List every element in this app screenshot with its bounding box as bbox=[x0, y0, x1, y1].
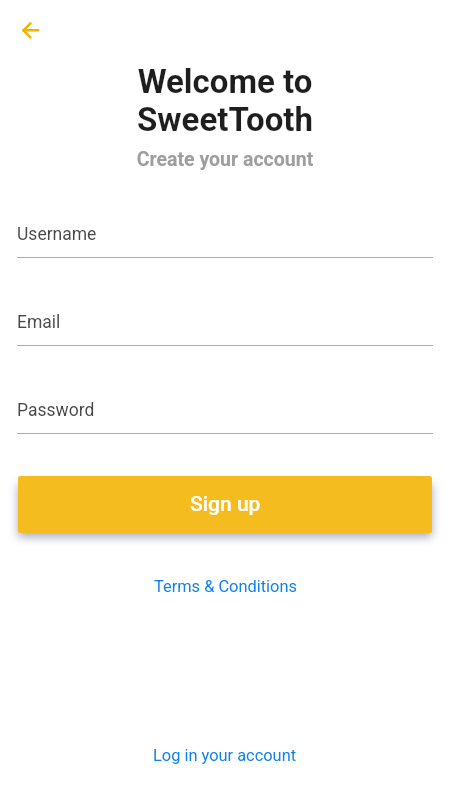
staticText: Terms & Conditions bbox=[154, 577, 297, 596]
staticText: Sign up bbox=[190, 492, 261, 517]
button[interactable]: Back bbox=[8, 8, 53, 53]
staticText: Email bbox=[17, 312, 61, 333]
staticText: Password bbox=[17, 400, 95, 421]
staticText: Log in your account bbox=[153, 746, 297, 765]
button[interactable]: Password bbox=[0, 400, 450, 434]
staticText: Username bbox=[17, 224, 97, 245]
staticText: Welcome to SweetTooth bbox=[0, 62, 450, 139]
button[interactable]: Email bbox=[0, 312, 450, 346]
button[interactable]: Username bbox=[0, 224, 450, 258]
button[interactable]: Sign up bbox=[18, 476, 432, 533]
button[interactable]: Terms & Conditions bbox=[144, 571, 307, 602]
staticText: Create your account bbox=[0, 148, 450, 171]
button[interactable]: Log in your account bbox=[143, 740, 307, 771]
